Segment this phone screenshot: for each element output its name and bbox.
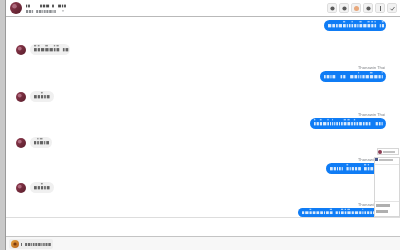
button[interactable] bbox=[30, 137, 52, 148]
staticText: Thanawin Thai bbox=[358, 65, 386, 70]
button[interactable]: Add person bbox=[351, 3, 361, 13]
button[interactable] bbox=[30, 91, 54, 102]
button[interactable]: Video call bbox=[339, 3, 349, 13]
button[interactable] bbox=[320, 71, 386, 82]
button[interactable]: Done bbox=[387, 3, 397, 13]
button[interactable]: Call bbox=[327, 3, 337, 13]
button[interactable] bbox=[310, 118, 386, 129]
button[interactable] bbox=[30, 44, 70, 55]
button[interactable] bbox=[30, 182, 54, 193]
staticText: Thanawin Thai bbox=[358, 157, 386, 162]
button[interactable] bbox=[298, 208, 386, 217]
staticText: Thanawin Thai bbox=[358, 202, 386, 207]
button[interactable] bbox=[11, 240, 51, 248]
staticText: Thanawin Thai bbox=[358, 112, 386, 117]
button[interactable]: Notification bbox=[377, 148, 399, 155]
button[interactable] bbox=[326, 163, 386, 174]
button[interactable]: More bbox=[375, 3, 385, 13]
button[interactable]: Settings bbox=[363, 3, 373, 13]
button[interactable] bbox=[324, 20, 386, 31]
